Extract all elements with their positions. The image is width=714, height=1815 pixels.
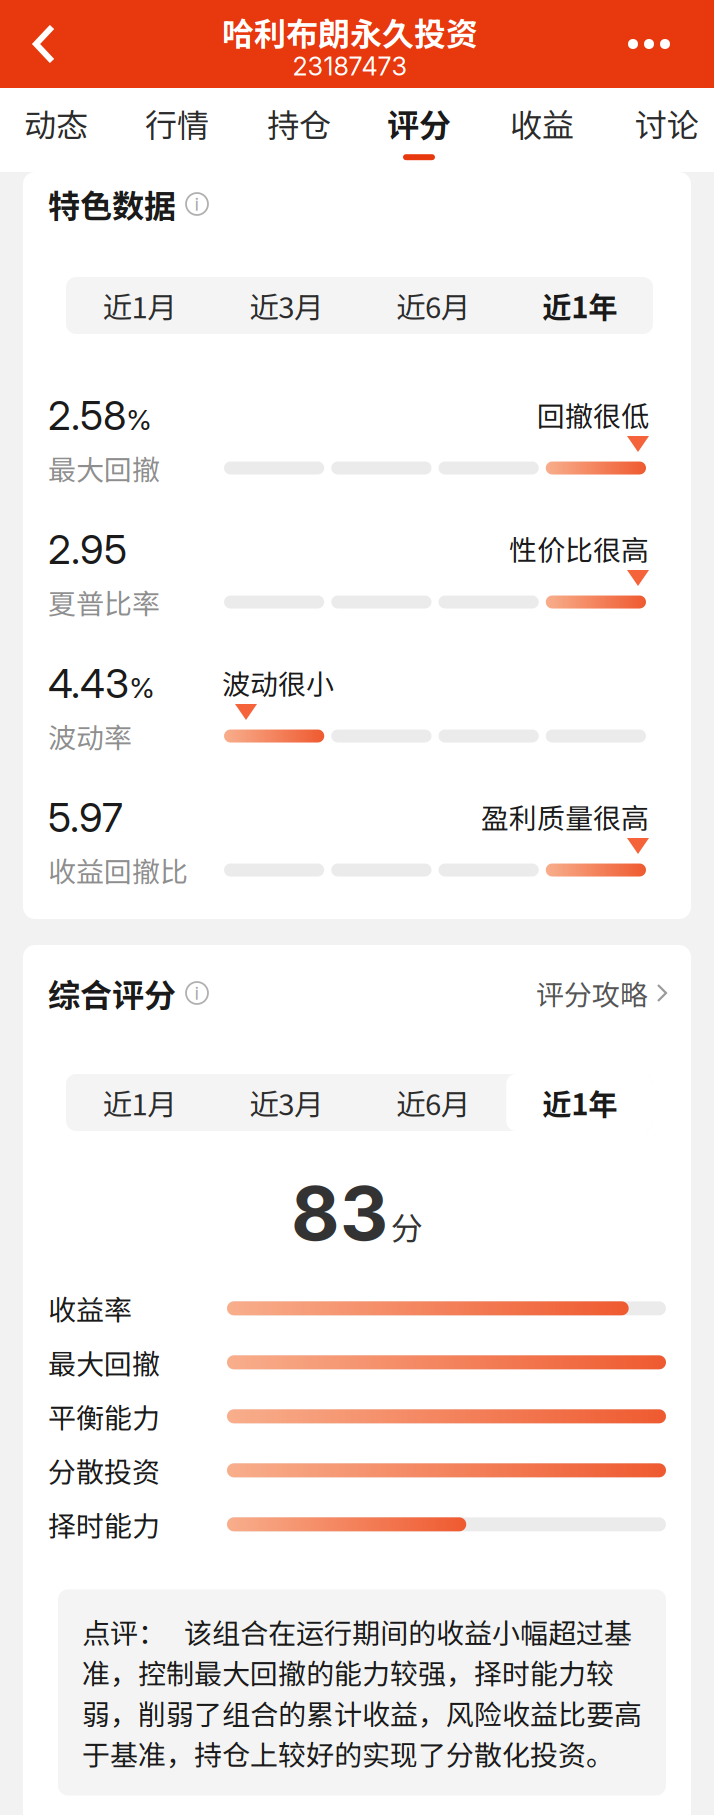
button[interactable]: 动态 [6, 88, 106, 172]
button[interactable]: 近6月 [359, 1074, 506, 1131]
staticText: % [126, 403, 152, 437]
staticText: 波动率 [48, 716, 132, 756]
button[interactable]: 行情 [127, 88, 227, 172]
staticText: 回撤很低 [537, 394, 649, 435]
button[interactable]: 持仓 [249, 88, 349, 172]
button[interactable]: 近1年 [506, 277, 653, 334]
staticText: 综合评分 [48, 970, 176, 1016]
staticText: 近3月 [249, 284, 323, 327]
staticText: 行情 [145, 100, 209, 146]
staticText: 收益回撤比 [48, 850, 188, 890]
staticText: 近1月 [102, 1081, 176, 1124]
staticText: 最大回撤 [48, 448, 160, 488]
staticText: 近6月 [396, 284, 470, 327]
staticText: 近1年 [542, 284, 617, 327]
staticText: 择时能力 [48, 1504, 160, 1545]
staticText: 持仓 [267, 100, 331, 146]
button[interactable]: 近6月 [359, 277, 506, 334]
staticText: 近1年 [542, 1081, 617, 1124]
staticText: 波动很小 [222, 662, 334, 703]
staticText: 夏普比率 [48, 582, 160, 622]
staticText: 5.97 [48, 793, 123, 842]
button[interactable]: 评分攻略 [536, 973, 669, 1013]
staticText: 23187473 [292, 51, 407, 81]
staticText: % [129, 671, 155, 705]
staticText: 近3月 [249, 1081, 323, 1124]
button[interactable]: Back [0, 0, 88, 88]
button[interactable]: 近1月 [66, 277, 213, 334]
button[interactable]: 近3月 [213, 1074, 360, 1131]
staticText: i [194, 982, 199, 1004]
button[interactable]: 收益 [492, 88, 592, 172]
staticText: 哈利布朗永久投资 [222, 8, 478, 55]
staticText: 4.43 [48, 659, 129, 708]
staticText: 83 [291, 1168, 388, 1258]
staticText: 评分 [387, 100, 451, 146]
staticText: i [194, 193, 199, 215]
button[interactable]: 近3月 [213, 277, 360, 334]
staticText: 分散投资 [48, 1450, 160, 1491]
button[interactable]: 近1年 [506, 1074, 653, 1131]
staticText: 评分攻略 [536, 973, 648, 1013]
staticText: 2.58 [48, 391, 126, 440]
button[interactable]: 近1月 [66, 1074, 213, 1131]
staticText: 特色数据 [48, 181, 176, 227]
staticText: 讨论 [635, 100, 699, 146]
staticText: 动态 [24, 100, 88, 146]
button[interactable]: More options [612, 0, 714, 88]
staticText: 收益 [510, 100, 574, 146]
button[interactable]: 讨论 [617, 88, 714, 172]
staticText: 盈利质量很高 [481, 796, 649, 837]
staticText: 最大回撤 [48, 1342, 160, 1383]
button[interactable]: 评分 [369, 88, 469, 172]
staticText: 2.95 [48, 525, 127, 574]
staticText: 分 [391, 1203, 423, 1249]
staticText: 性价比很高 [509, 528, 649, 569]
staticText: 近1月 [102, 284, 176, 327]
staticText: 平衡能力 [48, 1396, 160, 1437]
staticText: 收益率 [48, 1288, 132, 1329]
staticText: 点评： 该组合在运行期间的收益小幅超过基准，控制最大回撤的能力较强，择时能力较弱… [82, 1611, 642, 1773]
staticText: 近6月 [396, 1081, 470, 1124]
